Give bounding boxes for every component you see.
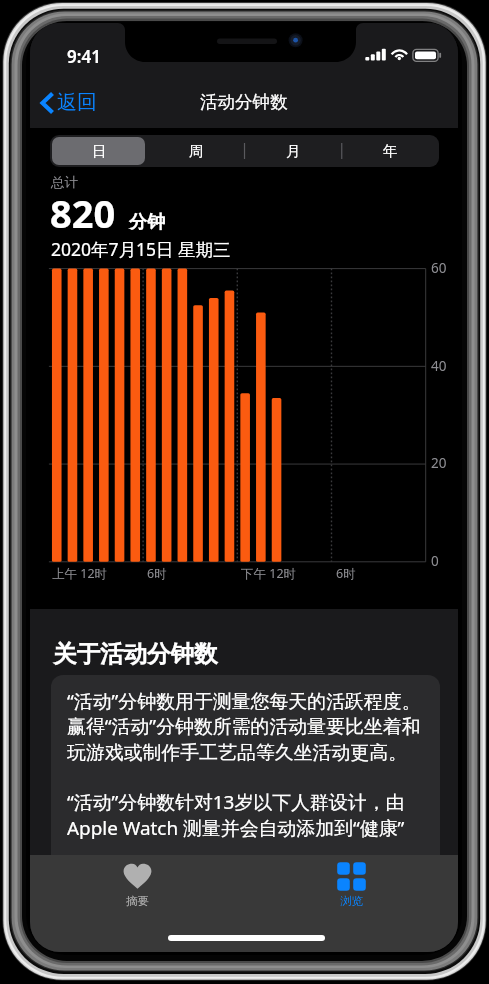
button[interactable]: 月: [245, 135, 342, 167]
button[interactable]: 摘要: [30, 855, 244, 915]
button[interactable]: 日: [50, 135, 148, 167]
staticText: 日: [92, 142, 107, 160]
staticText: “活动”分钟数用于测量您每天的活跃程度。 赢得“活动”分钟数所需的活动量要比坐着…: [67, 688, 421, 841]
staticText: 上午 12时: [52, 565, 108, 582]
staticText: 关于活动分钟数: [53, 639, 218, 669]
staticText: 6时: [147, 565, 167, 582]
staticText: 摘要: [126, 894, 149, 908]
staticText: 月: [286, 142, 301, 160]
staticText: 9:41: [67, 45, 101, 68]
button[interactable]: 浏览: [244, 855, 458, 915]
staticText: 820: [50, 187, 116, 239]
staticText: 40: [431, 357, 447, 375]
staticText: 浏览: [340, 894, 363, 908]
staticText: 返回: [57, 90, 97, 115]
staticText: 6时: [336, 565, 356, 582]
staticText: 活动分钟数: [200, 91, 288, 113]
button[interactable]: 年: [342, 135, 439, 167]
staticText: 60: [431, 259, 447, 277]
staticText: 总计: [51, 174, 78, 191]
staticText: 周: [189, 142, 204, 160]
staticText: 20: [431, 454, 447, 472]
staticText: 0: [431, 552, 439, 570]
button[interactable]: 返回: [30, 86, 102, 119]
button[interactable]: 周: [148, 135, 245, 167]
staticText: 2020年7月15日 星期三: [51, 237, 231, 261]
button[interactable]: “活动”分钟数用于测量您每天的活跃程度。 赢得“活动”分钟数所需的活动量要比坐着…: [51, 675, 440, 895]
staticText: 下午 12时: [241, 565, 297, 582]
staticText: 分钟: [129, 211, 165, 234]
staticText: 年: [383, 142, 398, 160]
